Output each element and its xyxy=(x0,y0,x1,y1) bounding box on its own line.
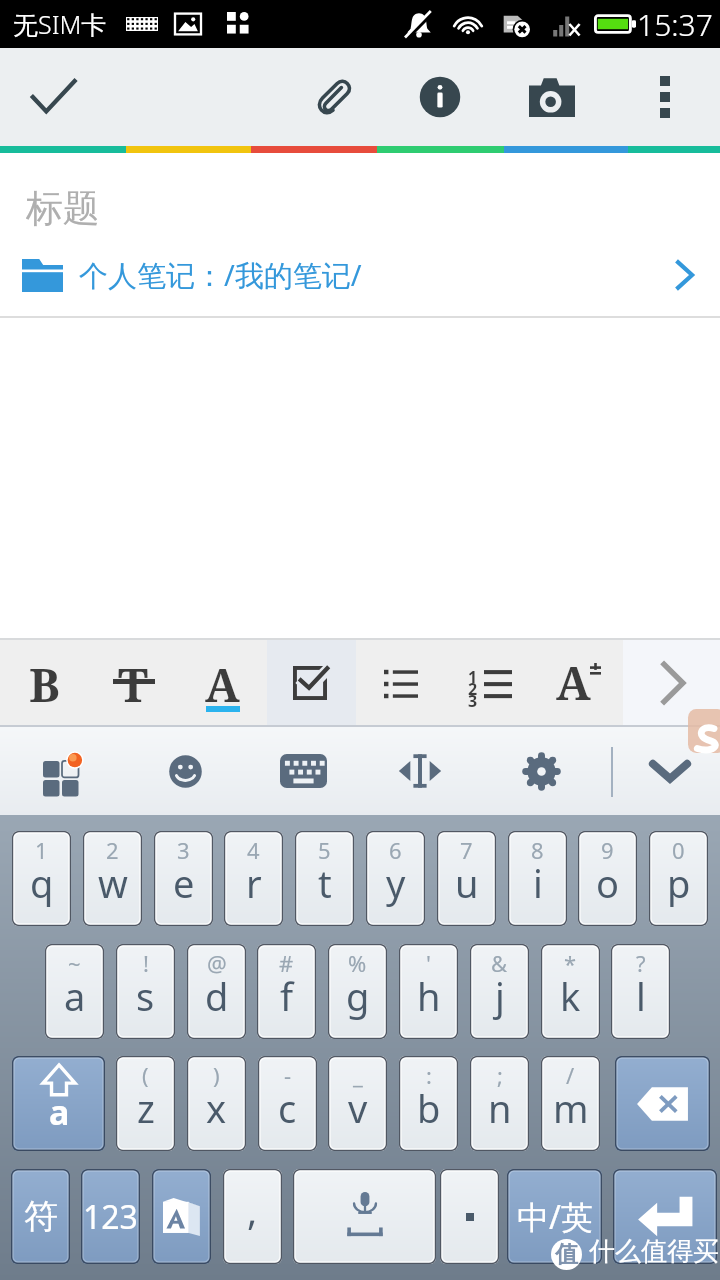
staticText: k xyxy=(560,970,581,1022)
staticText: ? xyxy=(636,948,646,978)
button[interactable]: More formatting xyxy=(623,640,720,725)
staticText: ; xyxy=(497,1060,503,1090)
button[interactable]: c xyxy=(258,1056,317,1151)
button[interactable]: Hide keyboard xyxy=(620,727,720,815)
button[interactable]: e xyxy=(154,831,213,926)
staticText: 1 xyxy=(35,835,48,865)
button[interactable]: enter xyxy=(613,1169,717,1264)
staticText: d xyxy=(205,970,229,1022)
staticText: x xyxy=(206,1082,227,1134)
staticText: ( xyxy=(142,1060,149,1090)
staticText: z xyxy=(137,1082,155,1134)
staticText: 符 xyxy=(24,1195,58,1238)
staticText: r xyxy=(246,857,262,909)
button[interactable]: w xyxy=(83,831,142,926)
button[interactable]: z xyxy=(116,1056,175,1151)
staticText: ) xyxy=(213,1060,220,1090)
staticText: j xyxy=(495,970,505,1022)
button[interactable]: 符 xyxy=(11,1169,70,1264)
button[interactable]: Keyboard xyxy=(245,727,361,815)
staticText: 123 xyxy=(83,1195,138,1239)
button[interactable]: v xyxy=(328,1056,387,1151)
button[interactable]: Strikethrough xyxy=(89,640,178,725)
button[interactable]: t xyxy=(295,831,354,926)
staticText: i xyxy=(533,857,543,909)
staticText: & xyxy=(491,948,508,978)
staticText: 3 xyxy=(468,690,478,712)
button[interactable]: dict xyxy=(152,1169,211,1264)
button[interactable]: a xyxy=(45,944,104,1039)
staticText: % xyxy=(348,948,367,978)
button[interactable]: x xyxy=(187,1056,246,1151)
button[interactable]: Done xyxy=(0,48,106,146)
staticText: 8 xyxy=(531,835,544,865)
staticText: 9 xyxy=(601,835,614,865)
staticText: @ xyxy=(207,948,227,978)
button[interactable]: j xyxy=(470,944,529,1039)
button[interactable]: o xyxy=(578,831,637,926)
button[interactable]: Font size xyxy=(534,640,623,725)
staticText: v xyxy=(348,1082,368,1134)
button[interactable]: h xyxy=(399,944,458,1039)
staticText: q xyxy=(30,857,54,909)
button[interactable]: 123 xyxy=(81,1169,140,1264)
button[interactable]: k xyxy=(541,944,600,1039)
button[interactable]: Info xyxy=(387,48,493,146)
staticText: / xyxy=(566,1060,575,1090)
button[interactable]: Text color xyxy=(178,640,267,725)
button[interactable]: Bulleted list xyxy=(356,640,445,725)
staticText: p xyxy=(667,857,691,909)
button[interactable]: dot xyxy=(440,1169,499,1264)
staticText: c xyxy=(278,1082,297,1134)
button[interactable]: s xyxy=(116,944,175,1039)
button[interactable]: Checklist xyxy=(267,640,356,725)
staticText: 中/英 xyxy=(517,1195,593,1239)
button[interactable]: Bold xyxy=(0,640,89,725)
button[interactable]: Settings xyxy=(479,727,603,815)
staticText: 标题 xyxy=(26,185,100,230)
button[interactable]: y xyxy=(366,831,425,926)
staticText: o xyxy=(596,857,619,909)
button[interactable]: Numbered list xyxy=(445,640,534,725)
button[interactable]: del xyxy=(615,1056,710,1151)
button[interactable]: Camera xyxy=(499,48,605,146)
staticText: 值 xyxy=(555,1240,578,1269)
button[interactable]: l xyxy=(611,944,670,1039)
staticText: t xyxy=(318,857,332,909)
button[interactable]: g xyxy=(328,944,387,1039)
button[interactable]: m xyxy=(541,1056,600,1151)
staticText: 2 xyxy=(106,835,119,865)
button[interactable]: Emoji xyxy=(125,727,245,815)
staticText: b xyxy=(417,1082,441,1134)
button[interactable]: shift xyxy=(12,1056,105,1151)
staticText: 1 xyxy=(468,666,478,688)
button[interactable]: n xyxy=(470,1056,529,1151)
button[interactable]: 个人笔记：/我的笔记/ xyxy=(0,247,720,303)
staticText: 无SIM卡 xyxy=(13,7,107,41)
button[interactable]: mic xyxy=(293,1169,436,1264)
button[interactable]: r xyxy=(224,831,283,926)
staticText: m xyxy=(553,1082,589,1134)
button[interactable]: p xyxy=(649,831,708,926)
button[interactable]: Cursor xyxy=(361,727,479,815)
button[interactable]: Apps xyxy=(7,727,125,815)
staticText: g xyxy=(346,970,370,1022)
button[interactable]: f xyxy=(257,944,316,1039)
button[interactable]: 中/英 xyxy=(507,1169,602,1264)
button[interactable]: More options xyxy=(612,48,718,146)
staticText: e xyxy=(173,857,195,909)
staticText: A xyxy=(556,651,591,714)
button[interactable]: q xyxy=(12,831,71,926)
button[interactable]: u xyxy=(437,831,496,926)
staticText: ~ xyxy=(68,948,81,978)
staticText: 0 xyxy=(672,835,685,865)
staticText: 4 xyxy=(247,835,260,865)
button[interactable]: d xyxy=(187,944,246,1039)
button[interactable]: comma xyxy=(223,1169,282,1264)
button[interactable]: b xyxy=(399,1056,458,1151)
staticText: h xyxy=(417,970,441,1022)
staticText: 15:37 xyxy=(637,4,713,45)
button[interactable]: Attach xyxy=(280,48,386,146)
staticText: f xyxy=(280,970,294,1022)
button[interactable]: i xyxy=(508,831,567,926)
